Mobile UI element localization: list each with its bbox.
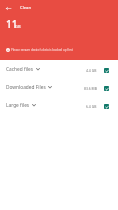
button[interactable]: Selected (104, 68, 109, 73)
staticText: GB (15, 24, 21, 29)
button[interactable]: Please ensure device's data is backed up… (0, 46, 118, 54)
staticText: Please ensure device's data is backed up… (11, 48, 73, 52)
staticText: 83.6 MB (84, 86, 97, 91)
staticText: 6.4 GB (86, 104, 97, 109)
staticText: Downloaded Files (6, 84, 46, 91)
staticText: Clean (20, 5, 32, 11)
button[interactable]: Cached files (0, 60, 118, 78)
button[interactable]: Large files (0, 96, 118, 114)
staticText: 4.4 GB (86, 68, 97, 73)
staticText: 11 (6, 17, 18, 31)
button[interactable]: Back (3, 3, 13, 13)
button[interactable]: Selected (104, 104, 109, 109)
staticText: Large files (6, 102, 30, 109)
button[interactable]: Downloaded Files (0, 78, 118, 96)
button[interactable]: Selected (104, 86, 109, 91)
staticText: Cached files (6, 66, 34, 73)
